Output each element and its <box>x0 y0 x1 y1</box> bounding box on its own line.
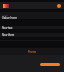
button[interactable]: Promo <box>0 48 64 55</box>
staticText: Promo <box>28 50 37 54</box>
button[interactable]: Account <box>57 4 61 8</box>
staticText: Value here <box>2 16 17 19</box>
button[interactable] <box>40 63 60 66</box>
staticText: Label <box>2 13 9 16</box>
button[interactable]: Row three <box>0 33 64 37</box>
staticText: Row three <box>2 33 15 37</box>
staticText: Row two <box>2 26 13 29</box>
button[interactable]: Label <box>0 12 64 19</box>
button[interactable]: Row two <box>0 26 64 29</box>
